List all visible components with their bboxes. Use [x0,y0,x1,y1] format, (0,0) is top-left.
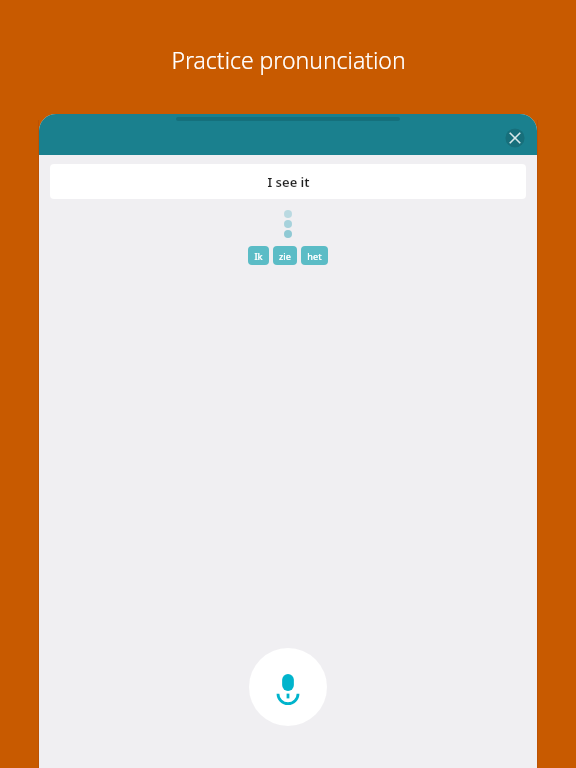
button[interactable]: Record pronunciation [249,648,327,726]
staticText: I see it [267,173,310,191]
staticText: Practice pronunciation [171,44,406,75]
staticText: Ik [254,250,263,262]
staticText: zie [279,250,291,262]
button[interactable]: Ik [248,246,269,265]
button[interactable]: zie [273,246,297,265]
button[interactable]: Close [501,124,529,152]
button[interactable]: I see it [50,164,526,199]
staticText: het [307,250,322,262]
button[interactable]: het [301,246,328,265]
